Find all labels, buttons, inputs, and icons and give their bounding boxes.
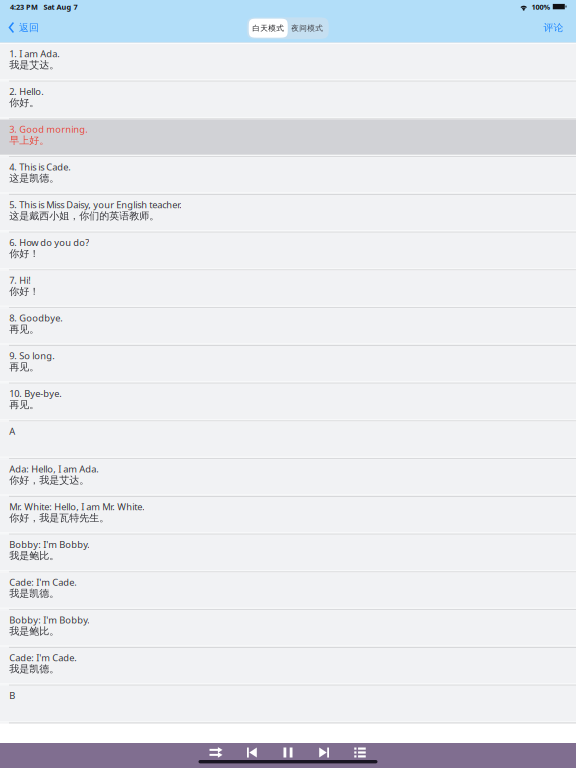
button[interactable]: 4. This is Cade. (0, 157, 576, 195)
staticText: Cade: I'm Cade. (9, 651, 77, 664)
button[interactable]: B (0, 686, 576, 724)
staticText: 这是凯德。 (9, 172, 59, 185)
staticText: 白天模式 (252, 23, 284, 33)
button[interactable]: 10. Bye-bye. (0, 384, 576, 422)
staticText: 夜间模式 (291, 23, 323, 33)
staticText: 10. Bye-bye. (9, 387, 62, 400)
button[interactable]: 7. Hi! (0, 270, 576, 308)
staticText: 我是凯德。 (9, 587, 59, 600)
staticText: Bobby: I'm Bobby. (9, 613, 90, 626)
staticText: 再见。 (9, 323, 39, 336)
staticText: 6. How do you do? (9, 236, 89, 249)
staticText: 返回 (19, 21, 39, 34)
staticText: A (9, 425, 15, 437)
button[interactable]: Bobby: I'm Bobby. (0, 610, 576, 648)
staticText: Mr. White: Hello, I am Mr. White. (9, 500, 145, 513)
button[interactable]: Playlist (342, 747, 378, 757)
staticText: 你好。 (9, 96, 39, 109)
button[interactable]: 白天模式 (249, 19, 288, 38)
staticText: 我是鲍比。 (9, 625, 59, 638)
staticText: Sat Aug 7 (43, 2, 77, 12)
button[interactable]: 8. Goodbye. (0, 308, 576, 346)
staticText: 4. This is Cade. (9, 160, 71, 173)
staticText: 2. Hello. (9, 85, 44, 98)
button[interactable]: 9. So long. (0, 346, 576, 384)
button[interactable]: Play order (198, 747, 234, 757)
button[interactable]: 6. How do you do? (0, 233, 576, 271)
button[interactable]: Pause (270, 747, 306, 757)
staticText: 3. Good morning. (9, 123, 88, 135)
button[interactable]: Mr. White: Hello, I am Mr. White. (0, 497, 576, 535)
staticText: 我是凯德。 (9, 663, 59, 675)
button[interactable]: Cade: I'm Cade. (0, 648, 576, 686)
staticText: 你好！ (9, 247, 39, 260)
staticText: 我是鲍比。 (9, 549, 59, 562)
button[interactable]: 返回 (0, 16, 47, 38)
button[interactable]: 评论 (534, 16, 576, 38)
staticText: 你好，我是瓦特先生。 (9, 512, 109, 524)
staticText: 再见。 (9, 361, 39, 373)
staticText: Bobby: I'm Bobby. (9, 538, 90, 551)
button[interactable]: 1. I am Ada. (0, 44, 576, 82)
staticText: Ada: Hello, I am Ada. (9, 462, 99, 475)
button[interactable]: 5. This is Miss Daisy, your English teac… (0, 195, 576, 233)
button[interactable]: Next track (306, 747, 342, 757)
staticText: 1. I am Ada. (9, 47, 60, 60)
button[interactable]: Ada: Hello, I am Ada. (0, 459, 576, 497)
staticText: 5. This is Miss Daisy, your English teac… (9, 198, 182, 211)
staticText: 评论 (544, 22, 564, 34)
button[interactable]: A (0, 421, 576, 459)
staticText: 9. So long. (9, 349, 55, 362)
staticText: 8. Goodbye. (9, 311, 63, 324)
staticText: 这是戴西小姐，你们的英语教师。 (9, 210, 159, 222)
staticText: 你好！ (9, 285, 39, 298)
staticText: 早上好。 (9, 134, 49, 147)
staticText: Cade: I'm Cade. (9, 576, 77, 588)
staticText: B (9, 689, 15, 702)
button[interactable]: Cade: I'm Cade. (0, 572, 576, 610)
button[interactable]: 夜间模式 (288, 19, 327, 38)
staticText: 我是艾达。 (9, 59, 59, 71)
button[interactable]: Bobby: I'm Bobby. (0, 535, 576, 573)
staticText: 7. Hi! (9, 274, 31, 286)
staticText: 100% (532, 2, 551, 12)
staticText: 4:23 PM (10, 2, 38, 12)
button[interactable]: 2. Hello. (0, 82, 576, 120)
button[interactable]: 3. Good morning. (0, 119, 576, 157)
staticText: 再见。 (9, 398, 39, 411)
button[interactable]: Previous track (234, 747, 270, 757)
staticText: 你好，我是艾达。 (9, 474, 89, 487)
